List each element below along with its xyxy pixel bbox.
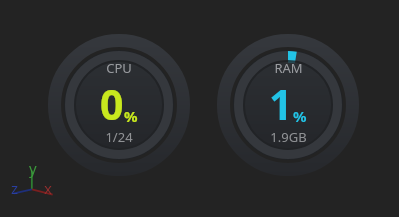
staticText: x [44, 178, 52, 198]
staticText: z [11, 178, 19, 198]
staticText: 1 [269, 76, 293, 132]
staticText: 1/24 [105, 128, 133, 146]
staticText: 1.9GB [270, 128, 307, 146]
staticText: 0 [100, 76, 124, 132]
button[interactable]: RAM 1 percent, 1.9 GB [217, 34, 359, 176]
staticText: CPU [106, 59, 132, 77]
staticText: % [293, 106, 307, 126]
staticText: y [29, 158, 37, 178]
staticText: % [124, 106, 138, 126]
other: Orientation axes gizmo [10, 155, 62, 207]
button[interactable]: CPU 0 percent, 1 of 24 [48, 34, 190, 176]
staticText: RAM [274, 59, 303, 77]
